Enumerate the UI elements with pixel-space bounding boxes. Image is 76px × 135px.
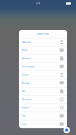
button[interactable]: Task: [19, 112, 67, 120]
button[interactable]: Communication: [19, 62, 67, 71]
staticText: Task: [22, 115, 26, 117]
staticText: Communication: [22, 65, 35, 68]
staticText: Model: [22, 49, 27, 51]
button[interactable]: Relationship: [19, 38, 67, 46]
button[interactable]: Event: [19, 120, 67, 128]
staticText: Time entry: [22, 98, 32, 100]
button[interactable]: Message: [19, 79, 67, 87]
staticText: Expense: [22, 106, 29, 109]
staticText: Note: [22, 90, 26, 92]
staticText: Create New: [37, 33, 49, 35]
staticText: Contact: [22, 74, 29, 76]
staticText: Relationship: [22, 41, 31, 43]
staticText: Message: [22, 82, 30, 84]
button[interactable]: Note: [19, 87, 67, 95]
staticText: 9:41: [36, 2, 40, 5]
staticText: Document: [22, 57, 31, 59]
button[interactable]: Contact: [19, 71, 67, 79]
button[interactable]: Document: [19, 54, 67, 62]
button[interactable]: Time entry: [19, 95, 67, 103]
button[interactable]: Expense: [19, 103, 67, 112]
button[interactable]: Close: [63, 127, 70, 134]
staticText: Event: [22, 123, 27, 125]
button[interactable]: Model: [19, 46, 67, 54]
